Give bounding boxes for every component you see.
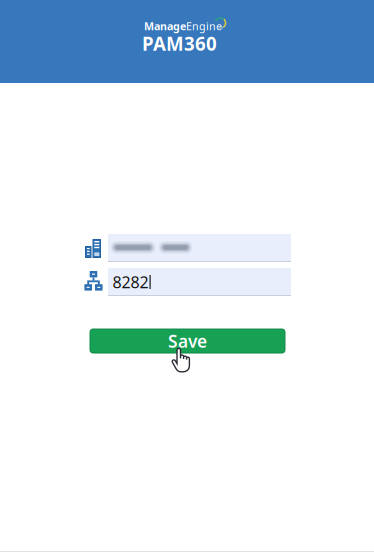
button[interactable]: Save — [90, 329, 285, 353]
staticText: Engine — [186, 19, 222, 33]
button[interactable]: 8282 — [108, 268, 291, 296]
staticText: PAM360 — [142, 31, 217, 56]
staticText: 8282 — [112, 271, 148, 293]
button[interactable]: Server name — [108, 234, 291, 262]
staticText: Save — [168, 329, 207, 352]
staticText: Manage — [144, 19, 186, 33]
